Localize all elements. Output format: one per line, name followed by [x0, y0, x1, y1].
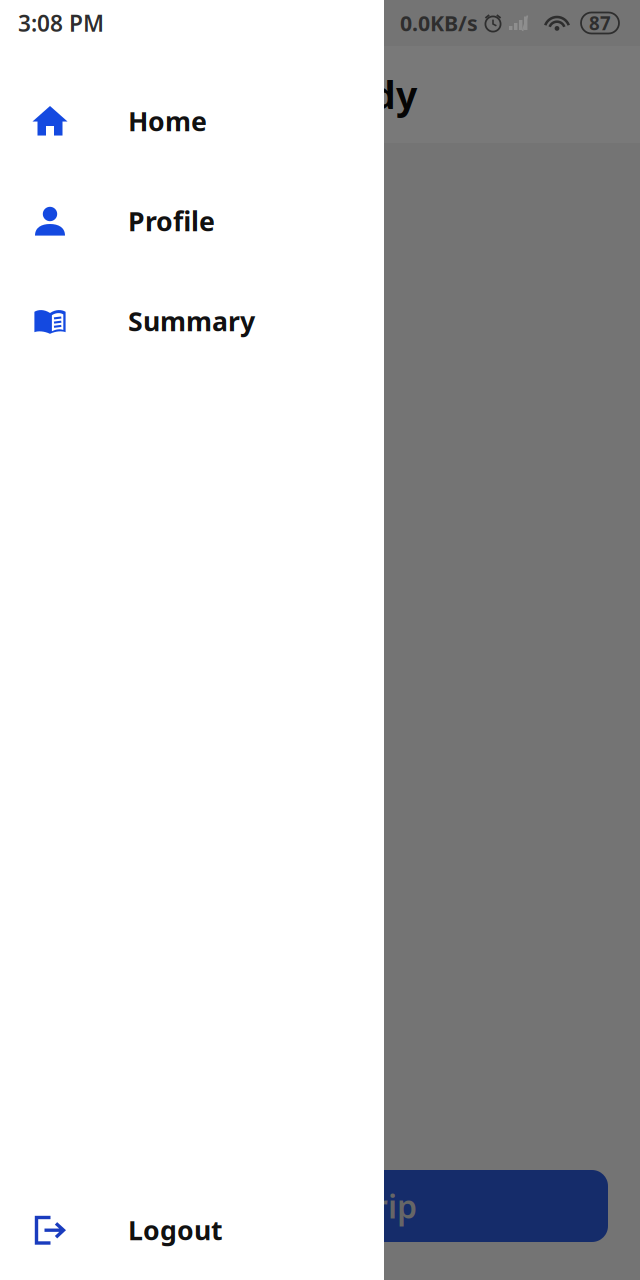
- staticText: Logout: [128, 1212, 223, 1248]
- staticText: Home: [128, 103, 207, 139]
- button[interactable]: Logout: [0, 1180, 384, 1280]
- staticText: Profile: [128, 203, 215, 239]
- button[interactable]: Profile: [0, 171, 384, 271]
- staticText: Start Trip: [272, 1185, 417, 1227]
- button[interactable]: Start Trip: [36, 1170, 608, 1242]
- staticText: Ready: [304, 70, 417, 119]
- button[interactable]: Home: [0, 71, 384, 171]
- staticText: Summary: [128, 303, 255, 339]
- staticText: 87: [589, 11, 611, 35]
- button[interactable]: Summary: [0, 271, 384, 371]
- button[interactable]: Close menu: [0, 0, 640, 1280]
- staticText: 0.0KB/s: [400, 9, 478, 37]
- staticText: 3:08 PM: [18, 8, 104, 38]
